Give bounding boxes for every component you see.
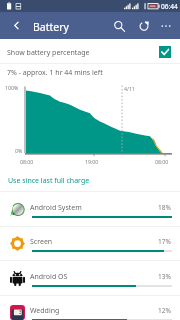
- staticText: Use since last full charge: [8, 176, 90, 186]
- staticText: 18%: [158, 203, 171, 212]
- button[interactable]: Navigate up: [4, 12, 28, 39]
- staticText: 08:00: [155, 158, 169, 165]
- staticText: Android OS: [30, 272, 68, 282]
- staticText: Screen: [30, 237, 53, 247]
- button[interactable]: Show battery percentage: [0, 39, 180, 64]
- staticText: Battery: [33, 20, 69, 34]
- button[interactable]: More options: [154, 12, 178, 39]
- staticText: 12%: [158, 306, 171, 315]
- button[interactable]: Search: [107, 12, 131, 39]
- button[interactable]: Wedding: [0, 295, 180, 320]
- button[interactable]: Screen: [0, 226, 180, 261]
- staticText: 4/11: [124, 85, 135, 92]
- staticText: 17%: [158, 237, 171, 246]
- staticText: 08:00: [20, 158, 34, 165]
- staticText: 06:44: [161, 2, 178, 11]
- button[interactable]: Android OS: [0, 261, 180, 296]
- staticText: 0%: [15, 147, 23, 154]
- staticText: Show battery percentage: [7, 48, 90, 58]
- staticText: 13%: [158, 272, 171, 281]
- staticText: 19:00: [85, 158, 99, 165]
- button[interactable]: Android System: [0, 192, 180, 227]
- staticText: 100%: [5, 84, 19, 91]
- staticText: Wedding: [30, 306, 60, 316]
- staticText: 7% - approx. 1 hr 44 mins left: [7, 68, 103, 78]
- button[interactable]: Refresh: [132, 12, 156, 39]
- staticText: Android System: [30, 203, 82, 213]
- button[interactable]: Use since last full charge: [0, 170, 180, 192]
